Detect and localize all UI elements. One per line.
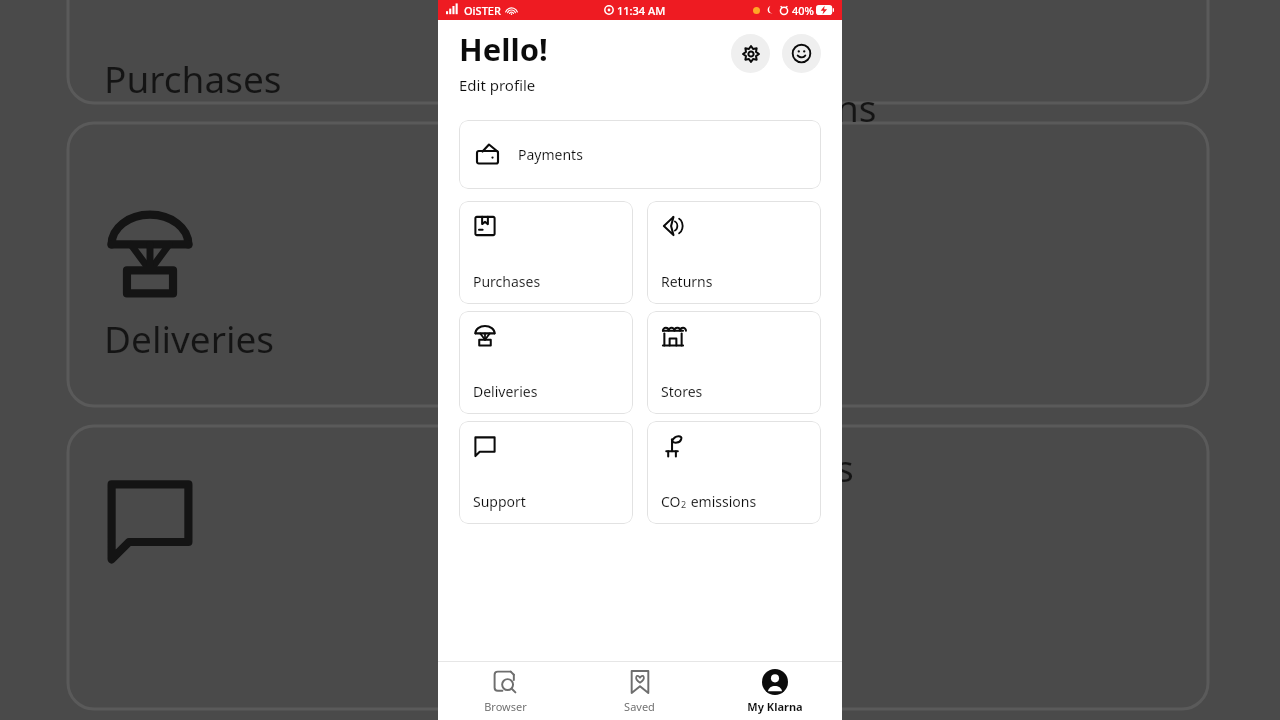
staticText: Browser — [484, 699, 527, 714]
button[interactable]: Profile mood — [782, 34, 821, 73]
staticText: ns — [836, 82, 877, 132]
button[interactable]: Support — [459, 421, 633, 524]
staticText: OiSTER — [464, 3, 501, 18]
staticText: emissions — [687, 492, 757, 511]
staticText: Deliveries — [104, 313, 275, 363]
staticText: My Klarna — [747, 699, 803, 714]
staticText: Returns — [661, 272, 713, 291]
staticText: Purchases — [104, 53, 282, 103]
button[interactable]: Deliveries — [459, 311, 633, 414]
staticText: Deliveries — [473, 382, 538, 401]
staticText: Saved — [624, 699, 655, 714]
button[interactable]: Stores — [647, 311, 821, 414]
staticText: Edit profile — [459, 75, 536, 95]
staticText: Hello! — [459, 28, 548, 70]
staticText: 40% — [792, 3, 814, 18]
button[interactable]: Payments — [459, 120, 821, 189]
staticText: CO — [661, 492, 681, 511]
button[interactable]: Returns — [647, 201, 821, 304]
staticText: 11:34 AM — [617, 3, 666, 18]
staticText: Stores — [661, 382, 703, 401]
button[interactable]: Purchases — [459, 201, 633, 304]
staticText: Purchases — [473, 272, 541, 291]
staticText: s — [836, 442, 854, 492]
staticText: 2 — [681, 498, 687, 510]
button[interactable]: My Klarna — [707, 663, 842, 720]
button[interactable]: Settings — [731, 34, 770, 73]
button[interactable]: Browser — [438, 663, 572, 720]
staticText: Payments — [518, 145, 583, 164]
staticText: Support — [473, 492, 526, 511]
button[interactable]: CO — [647, 421, 821, 524]
button[interactable]: Saved — [572, 663, 707, 720]
